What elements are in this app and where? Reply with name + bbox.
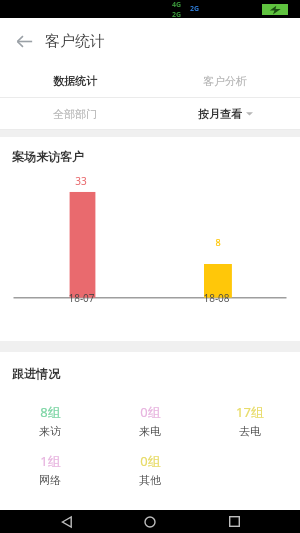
staticText: 2G	[172, 10, 182, 18]
staticText: 18-08	[203, 291, 230, 305]
button[interactable]: Back	[50, 510, 84, 533]
button[interactable]: 按月查看	[150, 98, 300, 129]
staticText: 33	[75, 174, 87, 188]
button[interactable]: Recent apps	[217, 510, 251, 533]
staticText: 全部部门	[53, 107, 97, 121]
staticText: 案场来访客户	[12, 149, 84, 164]
staticText: 来电	[139, 424, 161, 438]
staticText: 8	[215, 236, 221, 248]
staticText: 数据统计	[53, 74, 97, 88]
staticText: 2G	[190, 4, 200, 14]
staticText: 去电	[239, 424, 261, 438]
button[interactable]: 客户分析	[150, 64, 300, 97]
staticText: 跟进情况	[12, 366, 60, 381]
staticText: 17组	[236, 403, 264, 421]
button[interactable]: 0组	[100, 403, 200, 438]
button[interactable]: Home	[133, 510, 167, 533]
button[interactable]: 0组	[100, 452, 200, 487]
staticText: 其他	[139, 473, 161, 487]
staticText: 1组	[40, 452, 61, 470]
staticText: 网络	[39, 473, 61, 487]
staticText: 0组	[140, 403, 161, 421]
staticText: 来访	[39, 424, 61, 438]
staticText: 按月查看	[198, 107, 242, 121]
button[interactable]: 8组	[0, 403, 100, 438]
button[interactable]: Back	[8, 25, 40, 57]
button[interactable]: 全部部门	[0, 98, 150, 129]
staticText: 8组	[40, 403, 61, 421]
staticText: 0组	[140, 452, 161, 470]
staticText: 客户分析	[203, 74, 247, 88]
button[interactable]: 17组	[200, 403, 300, 438]
staticText: 4G	[172, 0, 182, 10]
staticText: 客户统计	[45, 32, 105, 51]
staticText: 18-07	[68, 291, 95, 305]
button[interactable]: 数据统计	[0, 64, 150, 97]
button[interactable]: 1组	[0, 452, 100, 487]
